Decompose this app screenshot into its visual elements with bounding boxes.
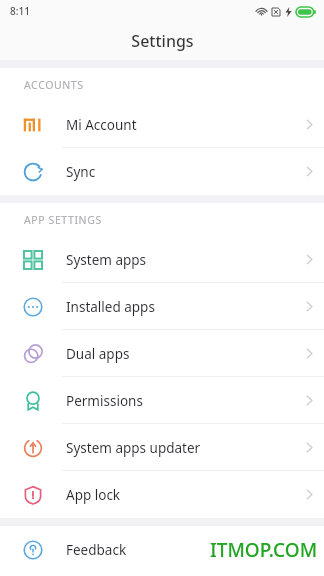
staticText: App lock <box>66 486 294 504</box>
staticText: Permissions <box>66 392 294 410</box>
staticText: Sync <box>66 163 294 181</box>
staticText: ACCOUNTS <box>24 78 84 92</box>
button[interactable]: App lock <box>0 471 324 518</box>
button[interactable]: Installed apps <box>0 283 324 330</box>
staticText: APP SETTINGS <box>24 213 102 227</box>
staticText: 8:11 <box>10 4 30 18</box>
button[interactable]: System apps updater <box>0 424 324 471</box>
staticText: Installed apps <box>66 298 294 316</box>
staticText: ITMOP.COM <box>210 537 318 563</box>
button[interactable]: Mi Account <box>0 101 324 148</box>
button[interactable]: System apps <box>0 236 324 283</box>
staticText: Dual apps <box>66 345 294 363</box>
button[interactable]: Feedback <box>0 526 324 573</box>
staticText: System apps <box>66 251 294 269</box>
staticText: Settings <box>131 30 194 52</box>
staticText: Mi Account <box>66 116 294 134</box>
button[interactable]: Sync <box>0 148 324 195</box>
button[interactable]: Permissions <box>0 377 324 424</box>
button[interactable]: Dual apps <box>0 330 324 377</box>
staticText: Feedback <box>66 541 127 559</box>
staticText: System apps updater <box>66 439 294 457</box>
